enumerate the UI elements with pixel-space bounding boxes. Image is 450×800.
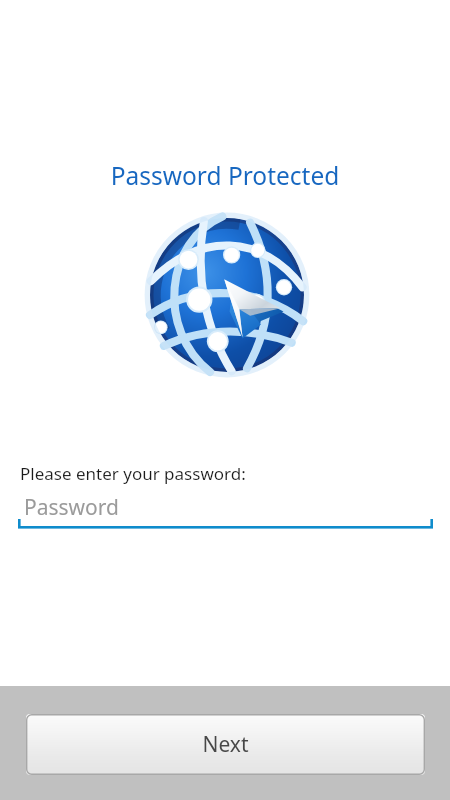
staticText: Password Protected	[0, 159, 450, 192]
button[interactable]: Password	[18, 492, 433, 530]
button[interactable]: Next	[26, 714, 425, 775]
staticText: Password	[24, 493, 119, 522]
staticText: Please enter your password:	[20, 462, 246, 485]
staticText: Next	[202, 730, 249, 759]
